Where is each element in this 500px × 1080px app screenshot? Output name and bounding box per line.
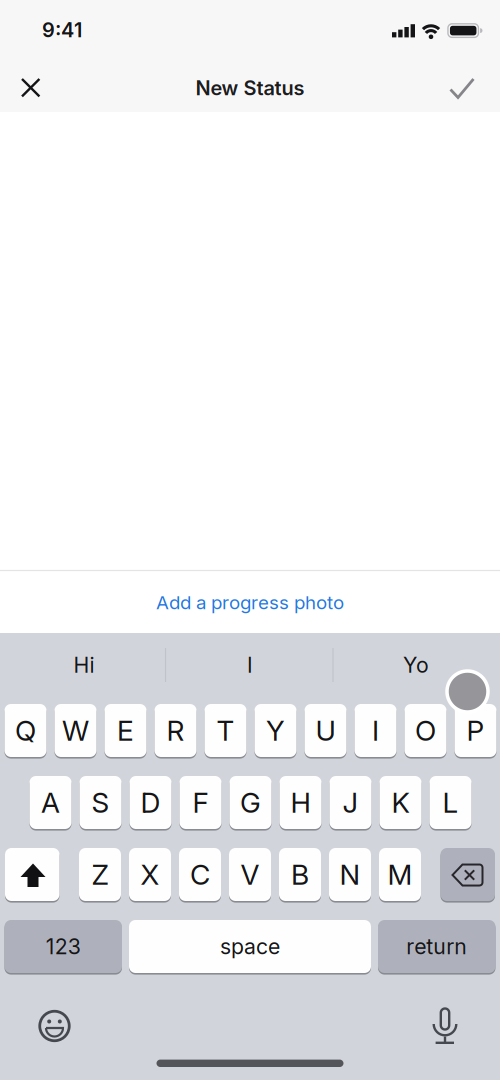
- button[interactable]: Dictation: [423, 1003, 467, 1047]
- button[interactable]: space: [129, 920, 371, 973]
- button[interactable]: D: [129, 776, 171, 829]
- staticText: space: [220, 934, 280, 959]
- button[interactable]: Close: [9, 66, 53, 110]
- staticText: N: [339, 858, 360, 891]
- button[interactable]: V: [229, 848, 271, 901]
- button[interactable]: L: [429, 776, 471, 829]
- button[interactable]: W: [54, 704, 96, 757]
- button[interactable]: Delete: [440, 848, 495, 901]
- button[interactable]: M: [379, 848, 421, 901]
- button[interactable]: F: [179, 776, 221, 829]
- button[interactable]: E: [104, 704, 146, 757]
- button[interactable]: P: [454, 704, 496, 757]
- button[interactable]: H: [279, 776, 321, 829]
- button[interactable]: Y: [254, 704, 296, 757]
- button[interactable]: Hi: [6, 641, 161, 689]
- button[interactable]: J: [329, 776, 371, 829]
- staticText: U: [315, 714, 335, 747]
- staticText: X: [140, 858, 159, 891]
- button[interactable]: Add a progress photo: [0, 571, 500, 633]
- staticText: 9:41: [42, 18, 82, 42]
- staticText: return: [406, 934, 467, 959]
- button[interactable]: G: [229, 776, 271, 829]
- button[interactable]: Emoji: [32, 1004, 76, 1048]
- button[interactable]: R: [154, 704, 196, 757]
- button[interactable]: Yo: [338, 641, 493, 689]
- staticText: O: [415, 714, 436, 747]
- button[interactable]: I: [354, 704, 396, 757]
- button[interactable]: C: [179, 848, 221, 901]
- staticText: V: [240, 858, 259, 891]
- staticText: G: [240, 786, 261, 819]
- staticText: S: [91, 786, 109, 819]
- staticText: A: [41, 786, 60, 819]
- staticText: W: [62, 714, 89, 747]
- staticText: D: [140, 786, 160, 819]
- staticText: K: [391, 786, 409, 819]
- button[interactable]: Post: [440, 66, 484, 110]
- button[interactable]: U: [304, 704, 346, 757]
- staticText: Y: [266, 714, 285, 747]
- button[interactable]: I: [172, 641, 327, 689]
- staticText: Q: [15, 714, 36, 747]
- button[interactable]: A: [29, 776, 71, 829]
- button[interactable]: O: [404, 704, 446, 757]
- staticText: J: [342, 786, 358, 819]
- button[interactable]: Shift: [5, 848, 59, 901]
- staticText: 123: [46, 934, 81, 959]
- staticText: C: [190, 858, 210, 891]
- button[interactable]: X: [129, 848, 171, 901]
- staticText: Hi: [73, 652, 94, 678]
- staticText: T: [216, 714, 234, 747]
- button[interactable]: T: [204, 704, 246, 757]
- staticText: New Status: [195, 76, 304, 100]
- staticText: H: [290, 786, 310, 819]
- button[interactable]: K: [379, 776, 421, 829]
- button[interactable]: S: [79, 776, 121, 829]
- button[interactable]: Q: [4, 704, 46, 757]
- staticText: L: [442, 786, 458, 819]
- staticText: E: [117, 714, 134, 747]
- staticText: Yo: [403, 652, 429, 678]
- staticText: Add a progress photo: [156, 591, 344, 613]
- staticText: B: [291, 858, 309, 891]
- button[interactable]: 123: [4, 920, 122, 973]
- staticText: P: [466, 714, 484, 747]
- staticText: F: [192, 786, 208, 819]
- staticText: Z: [91, 858, 108, 891]
- staticText: M: [387, 858, 412, 891]
- button[interactable]: return: [378, 920, 495, 973]
- staticText: I: [247, 652, 253, 678]
- button[interactable]: Z: [79, 848, 121, 901]
- button[interactable]: B: [279, 848, 321, 901]
- button[interactable]: N: [329, 848, 371, 901]
- staticText: R: [166, 714, 184, 747]
- staticText: I: [372, 714, 379, 747]
